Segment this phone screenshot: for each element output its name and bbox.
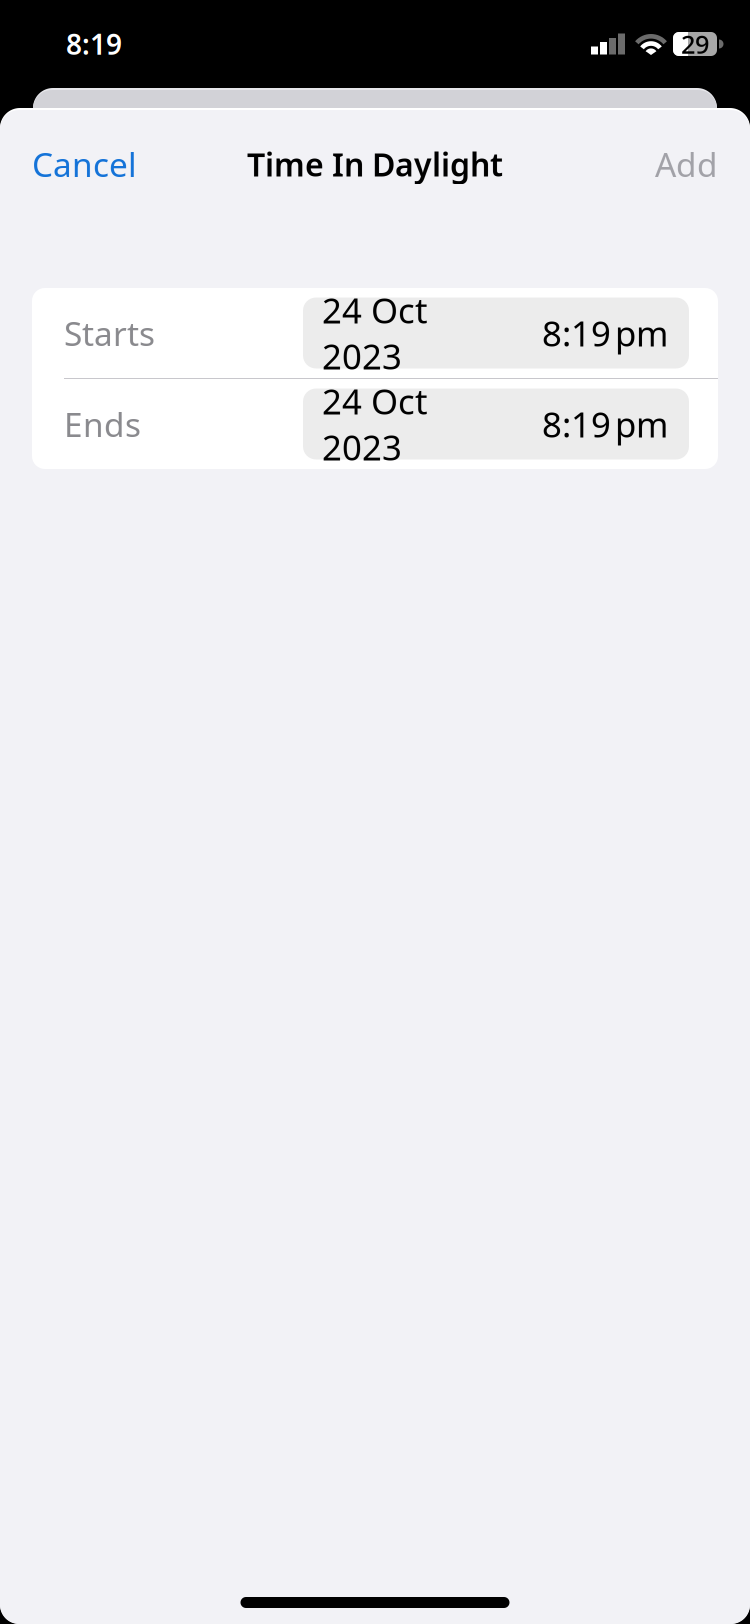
staticText: Cancel <box>32 142 137 186</box>
staticText: Time In Daylight <box>247 143 503 185</box>
button[interactable]: Cancel <box>32 142 137 186</box>
staticText: pm <box>615 310 668 356</box>
staticText: Starts <box>64 311 155 355</box>
staticText: 24 Oct 2023 <box>322 287 428 379</box>
staticText: 29 <box>681 27 709 61</box>
staticText: 8:19 <box>542 401 611 447</box>
staticText: 8:19 <box>542 310 611 356</box>
staticText: 8:19 <box>66 25 122 63</box>
button[interactable]: 8:19 <box>524 297 692 368</box>
staticText: pm <box>615 401 668 447</box>
staticText: Ends <box>64 402 141 446</box>
button[interactable]: 8:19 <box>524 388 692 459</box>
button[interactable]: 24 Oct 2023 <box>300 297 524 368</box>
button[interactable]: Add <box>655 142 718 186</box>
button[interactable]: 24 Oct 2023 <box>300 388 524 459</box>
staticText: 24 Oct 2023 <box>322 378 428 470</box>
staticText: Add <box>655 142 718 186</box>
